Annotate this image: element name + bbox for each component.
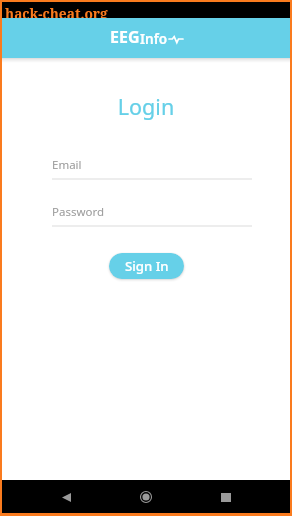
staticText: Password bbox=[52, 204, 105, 220]
button[interactable]: Password bbox=[52, 204, 252, 227]
button[interactable]: Sign In bbox=[109, 253, 184, 279]
staticText: Sign In bbox=[125, 257, 169, 275]
button[interactable]: Email bbox=[52, 157, 252, 180]
button[interactable]: Back bbox=[50, 481, 83, 514]
button[interactable]: Recent apps bbox=[209, 481, 242, 514]
staticText: Info bbox=[140, 29, 168, 48]
staticText: Login bbox=[2, 92, 290, 121]
staticText: hack-cheat.org bbox=[5, 4, 108, 20]
staticText: Email bbox=[52, 157, 82, 173]
staticText: EEG bbox=[110, 26, 140, 48]
button[interactable]: Home bbox=[129, 480, 162, 513]
